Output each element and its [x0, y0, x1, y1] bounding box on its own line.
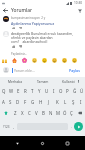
button[interactable]: Y	[36, 85, 43, 96]
button[interactable]: Ş	[69, 96, 77, 107]
button[interactable]: F	[21, 96, 29, 107]
button[interactable]: ?123	[1, 120, 11, 133]
staticText: K	[56, 99, 59, 105]
button[interactable]: Ğ	[71, 85, 78, 96]
button[interactable]: A	[0, 96, 7, 107]
button[interactable]: Home	[38, 139, 47, 148]
staticText: S	[9, 99, 12, 105]
button[interactable]: U	[43, 85, 50, 96]
button[interactable]: Yorum ekle...	[12, 63, 67, 77]
button[interactable]: destiyerrlik	[0, 29, 85, 48]
staticText: A	[2, 99, 5, 105]
button[interactable]: C	[26, 107, 33, 118]
button[interactable]: J	[45, 96, 53, 107]
staticText: Tamam	[37, 79, 49, 83]
button[interactable]: Ü	[78, 85, 85, 96]
staticText: Bunulmali ercuk kazandim,	[31, 31, 73, 35]
staticText: Z	[14, 110, 17, 116]
button[interactable]: I	[50, 85, 57, 96]
button[interactable]: Kullanici	[57, 77, 85, 85]
staticText: T	[31, 88, 34, 94]
staticText: F	[24, 99, 27, 105]
staticText: Q	[2, 88, 6, 94]
staticText: H	[39, 99, 43, 105]
staticText: D	[16, 99, 20, 105]
staticText: Ö	[63, 110, 67, 116]
staticText: Ü	[80, 88, 84, 94]
button[interactable]: Paylas	[67, 66, 82, 75]
button[interactable]: Emoji reaction	[51, 57, 57, 63]
button[interactable]: Emoji reaction	[21, 57, 27, 63]
button[interactable]: I	[77, 96, 85, 107]
button[interactable]: Send	[74, 122, 83, 131]
staticText: oferkk ve paylasin abardan	[11, 35, 53, 39]
button[interactable]: B	[40, 107, 47, 118]
button[interactable]: H	[37, 96, 45, 107]
staticText: Ç	[70, 110, 73, 116]
button[interactable]: Shift	[0, 107, 11, 118]
staticText: C	[28, 110, 31, 116]
staticText: J	[48, 99, 50, 105]
button[interactable]: Emoji reaction	[11, 57, 17, 63]
button[interactable]: Like	[11, 27, 15, 29]
staticText: Ğ	[73, 88, 77, 94]
button[interactable]: Dislike	[18, 44, 22, 48]
button[interactable]: kumpasinsanincuyan 2 y	[0, 14, 85, 29]
button[interactable]: S	[7, 96, 14, 107]
button[interactable]: V	[33, 107, 40, 118]
button[interactable]: Backspace	[75, 107, 85, 118]
staticText: I	[53, 88, 55, 94]
button[interactable]: D	[14, 96, 21, 107]
button[interactable]: Merhaba	[0, 77, 29, 85]
button[interactable]: L	[61, 96, 69, 107]
button[interactable]: N	[47, 107, 54, 118]
button[interactable]: K	[53, 96, 61, 107]
staticText: U	[45, 88, 49, 94]
button[interactable]: W	[8, 85, 15, 96]
button[interactable]: X	[19, 107, 26, 118]
button[interactable]: Ö	[61, 107, 68, 118]
staticText: kumpasinsanincuyan 2 y	[11, 16, 46, 20]
button[interactable]: Z	[11, 107, 19, 118]
button[interactable]: Tamam	[29, 77, 57, 85]
staticText: E	[17, 88, 20, 94]
button[interactable]: Like	[11, 44, 15, 48]
button[interactable]: Q	[0, 85, 8, 96]
button[interactable]: O	[57, 85, 64, 96]
staticText: N	[49, 110, 53, 116]
button[interactable]: Emoji reaction	[31, 57, 37, 63]
staticText: Y	[38, 88, 41, 94]
button[interactable]: Ç	[68, 107, 75, 118]
staticText: Paylastiniz...	[11, 52, 28, 56]
staticText: L	[64, 99, 67, 105]
button[interactable]: P	[64, 85, 71, 96]
staticText: .	[71, 124, 72, 129]
staticText: P	[66, 88, 69, 94]
button[interactable]: E	[15, 85, 22, 96]
staticText: W	[9, 88, 14, 94]
button[interactable]: Emoji reaction	[41, 57, 47, 63]
button[interactable]: G	[29, 96, 37, 107]
button[interactable]: Emoji reaction	[71, 57, 77, 63]
button[interactable]: Recent apps	[63, 139, 72, 148]
staticText: 10:30	[74, 1, 83, 5]
button[interactable]: ,	[11, 120, 16, 133]
staticText: O	[59, 88, 63, 94]
button[interactable]: M	[54, 107, 61, 118]
staticText: ?123	[3, 125, 10, 129]
button[interactable]: Back	[2, 7, 9, 14]
button[interactable]: Emoji reaction	[61, 57, 67, 63]
staticText: V	[35, 110, 38, 116]
button[interactable]: Sort comments	[76, 7, 83, 14]
button[interactable]: Emoji reaction	[1, 57, 7, 63]
button[interactable]: T	[29, 85, 36, 96]
staticText: B	[42, 110, 45, 116]
button[interactable]: Back	[13, 139, 22, 148]
staticText: com? abardbnasihcoll	[11, 39, 48, 43]
button[interactable]: Dislike	[18, 27, 22, 29]
staticText: Ş	[72, 99, 75, 105]
staticText: R	[24, 88, 27, 94]
button[interactable]: R	[22, 85, 29, 96]
